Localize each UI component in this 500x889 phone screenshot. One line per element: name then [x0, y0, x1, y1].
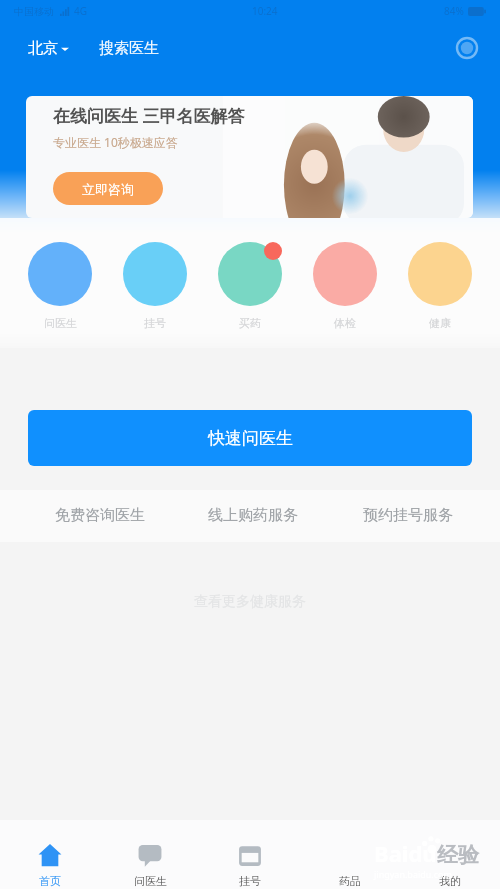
staticText: 快速问医生	[208, 428, 293, 449]
staticText: 健康	[429, 316, 451, 330]
staticText: 北京	[28, 39, 58, 58]
button[interactable]: 线上购药服务	[189, 503, 317, 527]
button[interactable]: 北京	[26, 39, 71, 58]
staticText: jingyan.baidu.com	[374, 868, 452, 880]
button[interactable]: 在线问医生 三甲名医解答	[26, 96, 473, 218]
staticText: 84%	[444, 4, 464, 18]
button[interactable]: 查看更多健康服务	[184, 590, 316, 614]
button[interactable]: 免费咨询医生	[36, 503, 164, 527]
staticText: 免费咨询医生	[55, 506, 145, 525]
button[interactable]: 挂号	[123, 242, 187, 330]
staticText: 立即咨询	[82, 181, 134, 197]
button[interactable]: 快速问医生	[28, 410, 472, 466]
button[interactable]: 健康	[408, 242, 472, 330]
staticText: 首页	[39, 874, 61, 888]
button[interactable]: 预约挂号服务	[344, 503, 472, 527]
button[interactable]: 首页	[0, 820, 100, 889]
staticText: 挂号	[239, 874, 261, 888]
staticText: 问医生	[134, 874, 167, 888]
staticText: 4G	[74, 4, 87, 18]
staticText: 线上购药服务	[208, 506, 298, 525]
button[interactable]: 问医生	[28, 242, 92, 330]
staticText: 体检	[334, 316, 356, 330]
button[interactable]: 挂号	[200, 820, 300, 889]
staticText: 买药	[239, 316, 261, 330]
button[interactable]: 搜索医生	[97, 39, 161, 58]
staticText: 经验	[437, 842, 479, 868]
button[interactable]: Messages	[454, 35, 480, 61]
staticText: 搜索医生	[99, 39, 159, 58]
button[interactable]: 立即咨询	[53, 172, 163, 205]
staticText: 查看更多健康服务	[194, 593, 306, 611]
staticText: 我的	[439, 874, 461, 888]
staticText: 问医生	[44, 316, 77, 330]
button[interactable]: 药品	[300, 820, 400, 889]
staticText: 10:24	[252, 4, 278, 18]
staticText: 药品	[339, 874, 361, 888]
staticText: 在线问医生 三甲名医解答	[53, 104, 245, 127]
staticText: 挂号	[144, 316, 166, 330]
button[interactable]: 我的	[400, 820, 500, 889]
button[interactable]: 问医生	[100, 820, 200, 889]
staticText: 专业医生 10秒极速应答	[53, 134, 178, 150]
button[interactable]: 体检	[313, 242, 377, 330]
button[interactable]: 买药	[218, 242, 282, 330]
staticText: 预约挂号服务	[363, 506, 453, 525]
staticText: 中国移动	[14, 5, 54, 18]
